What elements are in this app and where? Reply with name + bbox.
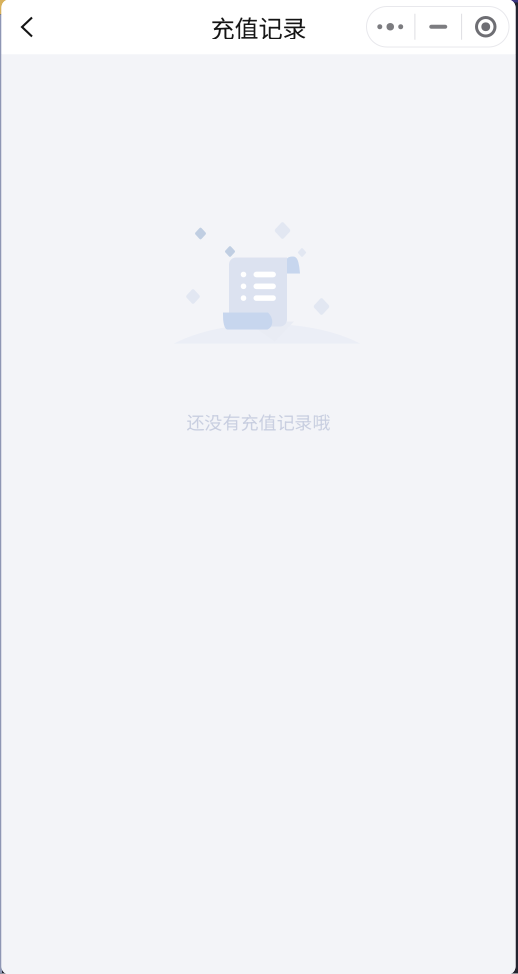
staticText: 充值记录 bbox=[210, 10, 306, 44]
staticText: 还没有充值记录哦 bbox=[186, 408, 330, 435]
button[interactable]: More bbox=[366, 6, 414, 47]
button[interactable]: Minimize bbox=[415, 6, 461, 47]
button[interactable]: Back bbox=[5, 5, 49, 49]
button[interactable]: Close bbox=[462, 6, 509, 47]
